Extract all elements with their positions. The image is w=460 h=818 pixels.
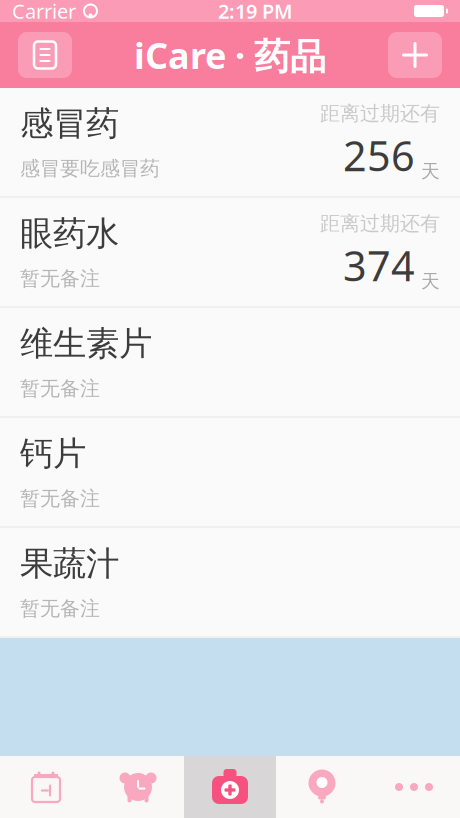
staticText: 眼药水 [20, 213, 119, 254]
button[interactable]: 提醒 [92, 756, 184, 818]
button[interactable]: 果蔬汁 [0, 528, 460, 638]
staticText: 暂无备注 [20, 376, 100, 401]
button[interactable]: 添加 [388, 32, 442, 78]
staticText: 2:19 PM [218, 0, 293, 24]
staticText: iCare · 药品 [134, 31, 326, 79]
button[interactable]: 钙片 [0, 418, 460, 528]
staticText: 天 [421, 270, 440, 293]
staticText: 维生素片 [20, 323, 152, 364]
button[interactable]: 位置 [276, 756, 368, 818]
staticText: 374 [343, 238, 415, 293]
button[interactable]: 维生素片 [0, 308, 460, 418]
staticText: 暂无备注 [20, 266, 100, 291]
staticText: 果蔬汁 [20, 543, 119, 584]
staticText: Carrier [12, 0, 76, 24]
staticText: 感冒要吃感冒药 [20, 156, 160, 181]
staticText: 距离过期还有 [320, 211, 440, 236]
button[interactable]: 药品 [184, 756, 276, 818]
button[interactable]: 记录 [18, 32, 72, 78]
staticText: 天 [421, 160, 440, 183]
staticText: 感冒药 [20, 103, 119, 144]
staticText: 距离过期还有 [320, 101, 440, 126]
button[interactable]: 更多 [368, 756, 460, 818]
button[interactable]: 感冒药 [0, 88, 460, 198]
staticText: 钙片 [20, 433, 86, 474]
staticText: 256 [343, 128, 415, 183]
staticText: 暂无备注 [20, 596, 100, 621]
button[interactable]: 眼药水 [0, 198, 460, 308]
staticText: 暂无备注 [20, 486, 100, 511]
button[interactable]: 日程 [0, 756, 92, 818]
